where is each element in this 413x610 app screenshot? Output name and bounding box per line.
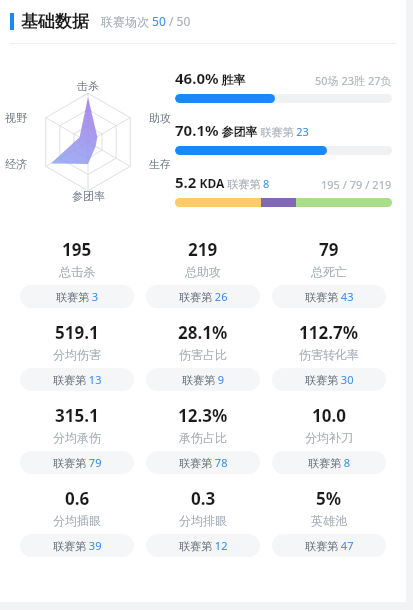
button[interactable]: 10.0 — [266, 404, 392, 474]
staticText: 联赛第 3 — [56, 289, 99, 304]
staticText: 参团率 — [72, 189, 105, 203]
staticText: 联赛第 39 — [53, 538, 102, 553]
staticText: 视野 — [5, 111, 27, 125]
staticText: 生存 — [149, 157, 171, 171]
button[interactable]: 112.7% — [266, 321, 392, 391]
staticText: 70.1% 参团率 联赛第 23 — [175, 120, 309, 140]
staticText: 195 / 79 / 219 — [321, 177, 392, 192]
staticText: 联赛第 30 — [305, 372, 354, 387]
button[interactable]: 12.3% — [140, 404, 266, 474]
staticText: 伤害占比 — [179, 347, 227, 362]
staticText: 经济 — [5, 157, 27, 171]
button[interactable]: 79 — [266, 238, 392, 308]
staticText: 分均伤害 — [53, 347, 101, 362]
staticText: 50场 23胜 27负 — [315, 73, 392, 88]
staticText: 10.0 — [312, 404, 346, 427]
staticText: 12.3% — [178, 404, 228, 427]
staticText: 联赛第 13 — [53, 372, 102, 387]
staticText: 分均承伤 — [53, 430, 101, 445]
button[interactable]: 315.1 — [14, 404, 140, 474]
staticText: 击杀 — [77, 79, 99, 93]
button[interactable]: 0.6 — [14, 487, 140, 557]
button[interactable]: 219 — [140, 238, 266, 308]
button[interactable]: 519.1 — [14, 321, 140, 391]
staticText: 联赛第 8 — [308, 455, 351, 470]
staticText: 总助攻 — [185, 264, 221, 279]
staticText: 联赛第 79 — [53, 455, 102, 470]
staticText: 联赛第 78 — [179, 455, 228, 470]
staticText: 0.3 — [191, 487, 216, 510]
button[interactable]: 5% — [266, 487, 392, 557]
staticText: 分均插眼 — [53, 513, 101, 528]
staticText: 79 — [319, 238, 339, 261]
staticText: 219 — [188, 238, 218, 261]
staticText: 联赛第 9 — [182, 372, 225, 387]
staticText: 基础数据 — [21, 11, 89, 32]
staticText: 315.1 — [55, 404, 99, 427]
button[interactable]: 0.3 — [140, 487, 266, 557]
staticText: 46.0% 胜率 — [175, 68, 246, 88]
staticText: 112.7% — [299, 321, 359, 344]
staticText: 联赛第 43 — [305, 289, 354, 304]
staticText: 分均补刀 — [305, 430, 353, 445]
staticText: 伤害转化率 — [299, 347, 359, 362]
staticText: 0.6 — [65, 487, 90, 510]
staticText: 助攻 — [149, 111, 171, 125]
staticText: 联赛场次 50 / 50 — [101, 13, 191, 29]
staticText: 总击杀 — [59, 264, 95, 279]
staticText: 195 — [62, 238, 92, 261]
staticText: 5.2 KDA 联赛第 8 — [175, 172, 270, 192]
staticText: 联赛第 26 — [179, 289, 228, 304]
staticText: 联赛第 12 — [179, 538, 228, 553]
staticText: 英雄池 — [311, 513, 347, 528]
staticText: 5% — [316, 487, 342, 510]
button[interactable]: 195 — [14, 238, 140, 308]
staticText: 28.1% — [178, 321, 228, 344]
staticText: 联赛第 47 — [305, 538, 354, 553]
staticText: 总死亡 — [311, 264, 347, 279]
staticText: 519.1 — [55, 321, 99, 344]
button[interactable]: 28.1% — [140, 321, 266, 391]
staticText: 承伤占比 — [179, 430, 227, 445]
staticText: 分均排眼 — [179, 513, 227, 528]
